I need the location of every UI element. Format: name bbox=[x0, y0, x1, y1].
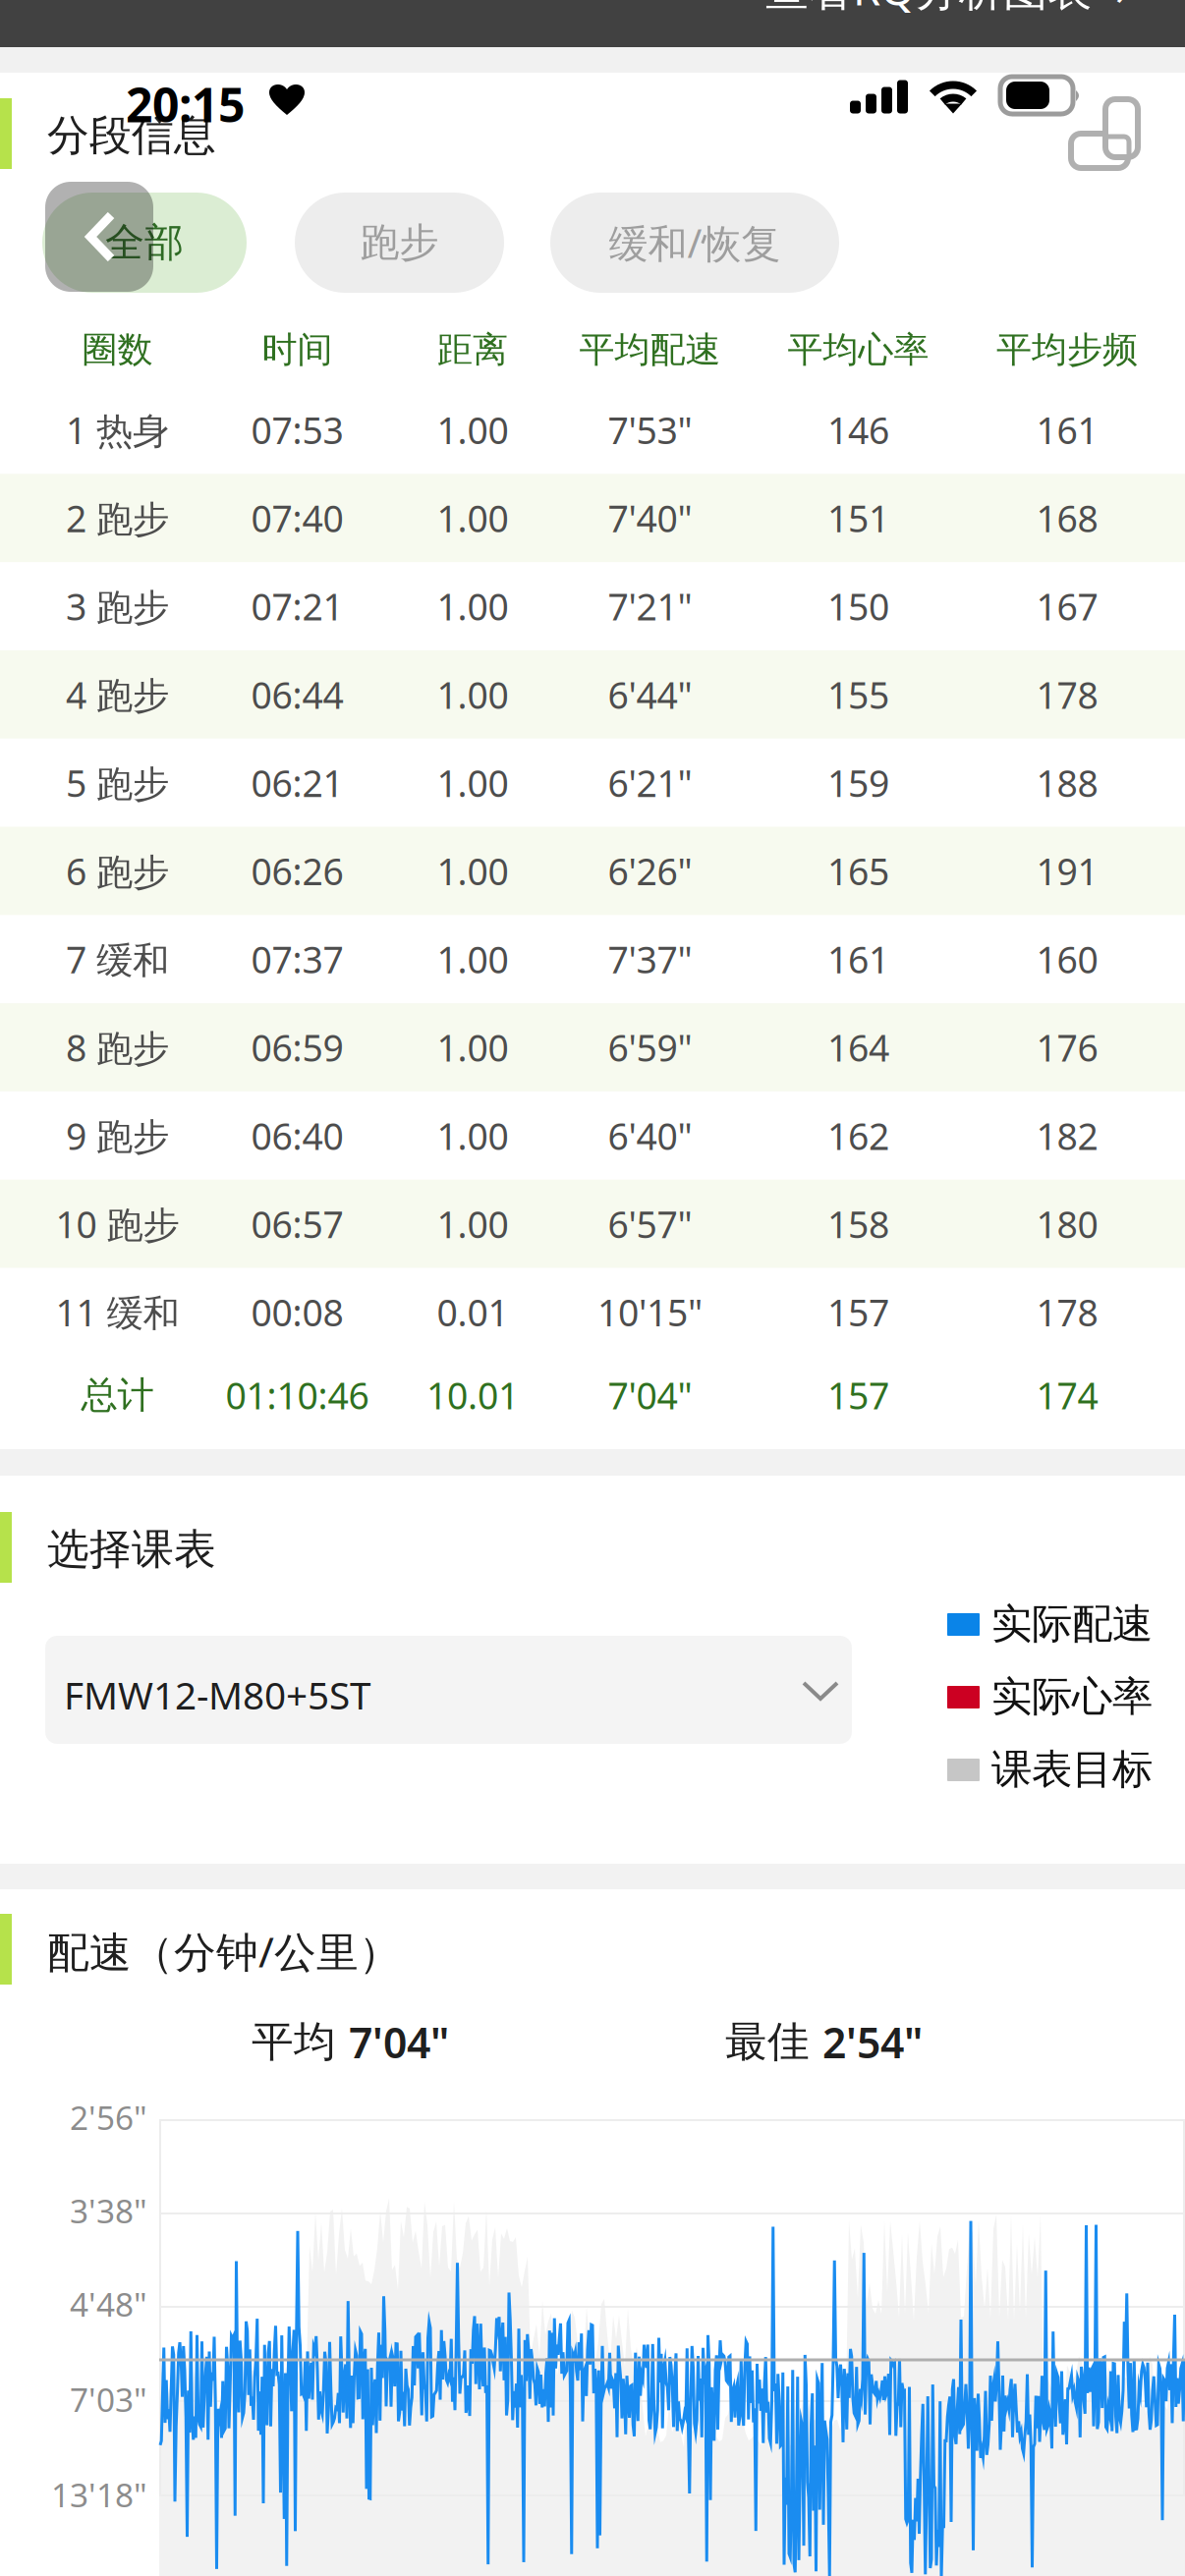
staticText: 平均心率 bbox=[788, 328, 929, 371]
staticText: 配速（分钟/公里） bbox=[47, 1923, 401, 1979]
staticText: 全部 bbox=[105, 218, 184, 267]
staticText: 8 跑步 bbox=[66, 1023, 169, 1072]
staticText: 选择课表 bbox=[47, 1524, 216, 1575]
staticText: 距离 bbox=[437, 328, 508, 371]
staticText: 07:21 bbox=[251, 582, 343, 631]
staticText: 7'40" bbox=[608, 494, 692, 542]
staticText: 4 跑步 bbox=[66, 670, 169, 719]
staticText: 10.01 bbox=[426, 1371, 519, 1419]
staticText: 160 bbox=[1036, 935, 1098, 984]
staticText: 7'21" bbox=[608, 582, 692, 631]
staticText: 1.00 bbox=[437, 1023, 508, 1072]
staticText: 7'03" bbox=[70, 2377, 147, 2421]
staticText: 时间 bbox=[262, 328, 333, 371]
staticText: 跑步 bbox=[360, 218, 439, 267]
staticText: 1.00 bbox=[437, 758, 508, 807]
staticText: 06:57 bbox=[251, 1199, 343, 1248]
staticText: 6'40" bbox=[608, 1111, 692, 1160]
button[interactable]: 全部 bbox=[42, 193, 247, 293]
staticText: 缓和/恢复 bbox=[609, 217, 781, 269]
button[interactable]: 缓和/恢复 bbox=[550, 193, 839, 293]
staticText: 182 bbox=[1036, 1111, 1098, 1160]
staticText: 2 跑步 bbox=[66, 494, 169, 542]
staticText: 161 bbox=[827, 935, 889, 984]
staticText: 157 bbox=[827, 1288, 889, 1336]
staticText: 6'44" bbox=[608, 670, 692, 719]
staticText: 167 bbox=[1036, 582, 1098, 631]
staticText: 1 热身 bbox=[66, 405, 169, 454]
staticText: 158 bbox=[827, 1199, 889, 1248]
staticText: FMW12-M80+5ST bbox=[64, 1669, 370, 1720]
staticText: 164 bbox=[827, 1023, 889, 1072]
staticText: 6'26" bbox=[608, 847, 692, 895]
staticText: 1.00 bbox=[437, 1111, 508, 1160]
button[interactable]: Back bbox=[45, 182, 153, 292]
staticText: 150 bbox=[827, 582, 889, 631]
staticText: 1.00 bbox=[437, 847, 508, 895]
staticText: 180 bbox=[1036, 1199, 1098, 1248]
staticText: 06:26 bbox=[251, 847, 343, 895]
staticText: 9 跑步 bbox=[66, 1111, 169, 1160]
staticText: 7'37" bbox=[608, 935, 692, 984]
staticText: 1.00 bbox=[437, 670, 508, 719]
staticText: 06:40 bbox=[251, 1111, 343, 1160]
button[interactable]: Rotate screen bbox=[1071, 99, 1138, 168]
staticText: 06:59 bbox=[251, 1023, 343, 1072]
staticText: 平均步频 bbox=[996, 328, 1138, 371]
staticText: 162 bbox=[827, 1111, 889, 1160]
staticText: 06:44 bbox=[251, 670, 343, 719]
staticText: 1.00 bbox=[437, 582, 508, 631]
staticText: 20:15 bbox=[126, 73, 245, 135]
staticText: 06:21 bbox=[251, 758, 343, 807]
staticText: 178 bbox=[1036, 1288, 1098, 1336]
staticText: 165 bbox=[827, 847, 889, 895]
staticText: 6'59" bbox=[608, 1023, 692, 1072]
staticText: 平均配速 bbox=[579, 328, 721, 371]
staticText: 查看RQ分析图表 › bbox=[764, 0, 1129, 18]
staticText: 6 跑步 bbox=[66, 847, 169, 895]
staticText: 3 跑步 bbox=[66, 582, 169, 631]
staticText: 146 bbox=[827, 405, 889, 454]
staticText: 7'04" bbox=[349, 2014, 449, 2070]
staticText: 151 bbox=[827, 494, 889, 542]
staticText: 2'54" bbox=[822, 2014, 923, 2070]
staticText: 课表目标 bbox=[991, 1744, 1153, 1794]
staticText: 191 bbox=[1036, 847, 1098, 895]
staticText: 7 缓和 bbox=[66, 935, 169, 984]
staticText: 176 bbox=[1036, 1023, 1098, 1072]
button[interactable]: 跑步 bbox=[295, 193, 504, 293]
staticText: 4'48" bbox=[70, 2282, 147, 2326]
staticText: 0.01 bbox=[437, 1288, 508, 1336]
staticText: 5 跑步 bbox=[66, 758, 169, 807]
staticText: 7'53" bbox=[608, 405, 692, 454]
staticText: 10'15" bbox=[597, 1288, 703, 1336]
staticText: 07:40 bbox=[251, 494, 343, 542]
staticText: 1.00 bbox=[437, 494, 508, 542]
staticText: 07:37 bbox=[251, 935, 343, 984]
staticText: 实际配速 bbox=[991, 1599, 1153, 1649]
staticText: 168 bbox=[1036, 494, 1098, 542]
staticText: 1.00 bbox=[437, 405, 508, 454]
staticText: 188 bbox=[1036, 758, 1098, 807]
staticText: 11 缓和 bbox=[56, 1288, 179, 1336]
staticText: 155 bbox=[827, 670, 889, 719]
staticText: 6'57" bbox=[608, 1199, 692, 1248]
staticText: 10 跑步 bbox=[56, 1199, 179, 1248]
staticText: 178 bbox=[1036, 670, 1098, 719]
staticText: 3'38" bbox=[70, 2189, 147, 2232]
staticText: 分段信息 bbox=[47, 110, 216, 161]
staticText: 1.00 bbox=[437, 935, 508, 984]
staticText: 2'56" bbox=[70, 2095, 147, 2139]
staticText: 00:08 bbox=[251, 1288, 343, 1336]
staticText: 6'21" bbox=[608, 758, 692, 807]
staticText: 总计 bbox=[81, 1373, 154, 1418]
staticText: 13'18" bbox=[51, 2473, 147, 2516]
staticText: 圈数 bbox=[82, 328, 153, 371]
button[interactable]: FMW12-M80+5ST bbox=[45, 1636, 852, 1744]
staticText: 07:53 bbox=[251, 405, 343, 454]
staticText: 平均 bbox=[252, 2016, 349, 2068]
staticText: 01:10:46 bbox=[226, 1371, 369, 1419]
staticText: 174 bbox=[1036, 1371, 1098, 1419]
staticText: 159 bbox=[827, 758, 889, 807]
staticText: 157 bbox=[827, 1371, 889, 1419]
